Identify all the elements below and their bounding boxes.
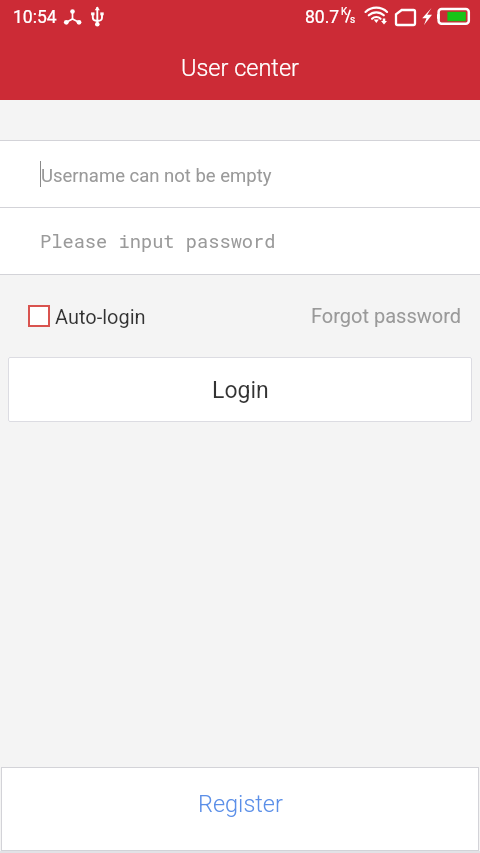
staticText: 80.7 [305,7,340,28]
staticText: s [350,14,356,26]
button[interactable]: Login [8,357,472,422]
staticText: Register [198,790,283,818]
staticText: K [341,6,348,18]
button[interactable]: Register [1,767,479,851]
staticText: 10:54 [13,7,57,28]
button[interactable]: Username can not be empty [0,141,480,207]
staticText: User center [181,54,299,82]
staticText: Username can not be empty [41,165,272,187]
button[interactable]: Please input password [0,208,480,274]
staticText: Login [212,377,269,404]
staticText: Auto-login [55,305,146,328]
staticText: Please input password [40,228,276,253]
button[interactable]: Auto-login [28,304,146,327]
